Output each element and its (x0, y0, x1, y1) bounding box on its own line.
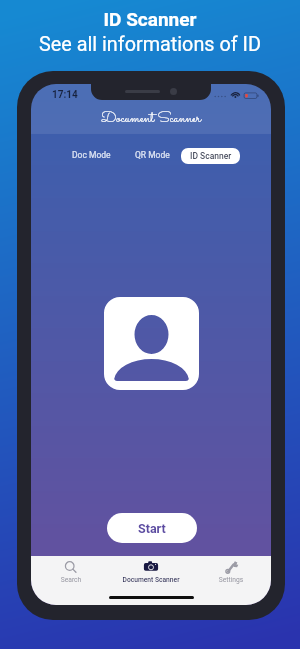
staticText: Document Scanner (117, 576, 185, 584)
button[interactable]: Search (37, 556, 105, 590)
staticText: Doc Mode (72, 150, 111, 160)
staticText: 17:14 (52, 89, 78, 101)
button[interactable]: QR Mode (128, 147, 176, 163)
button[interactable]: ID card (104, 297, 199, 390)
staticText: See all informations of ID (0, 33, 300, 56)
staticText: ID Scanner (0, 8, 300, 30)
staticText: QR Mode (135, 150, 170, 160)
staticText: Settings (197, 576, 265, 584)
staticText: Document Scanner (31, 108, 271, 130)
button[interactable]: Document Scanner (117, 556, 185, 590)
button[interactable]: Start (107, 513, 197, 543)
staticText: Start (138, 521, 166, 536)
button[interactable]: ID Scanner (181, 148, 240, 164)
button[interactable]: Doc Mode (67, 147, 115, 163)
staticText: Search (37, 576, 105, 584)
staticText: ID Scanner (190, 151, 232, 161)
button[interactable]: Settings (197, 556, 265, 590)
